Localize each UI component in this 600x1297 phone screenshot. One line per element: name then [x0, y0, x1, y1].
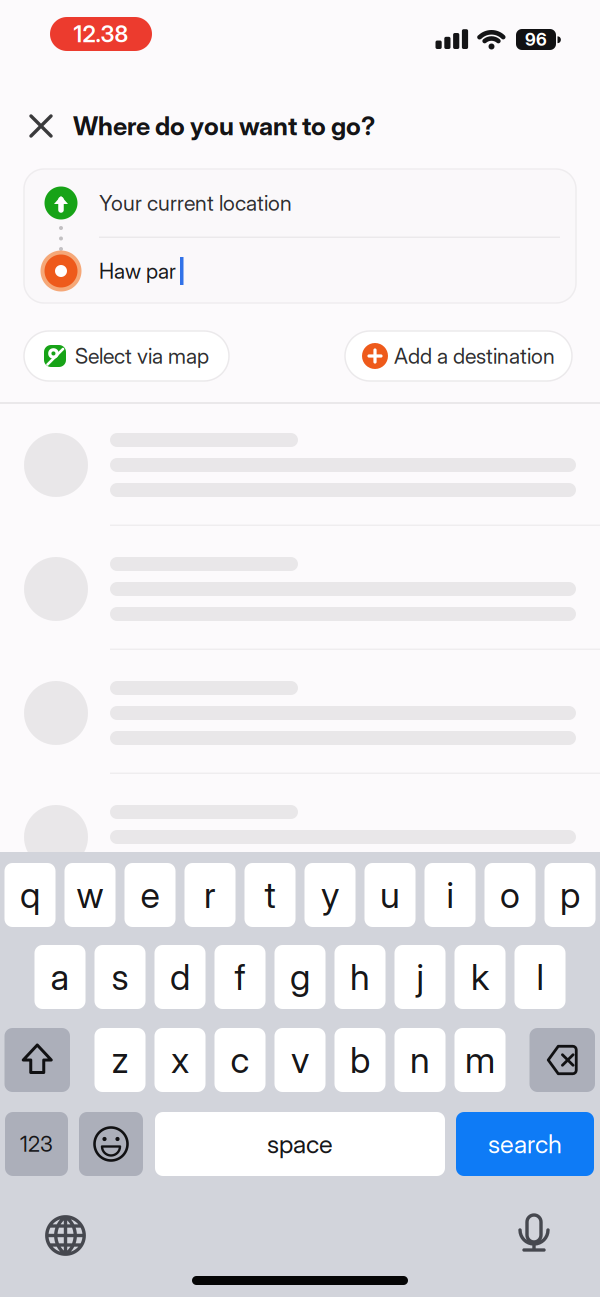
button[interactable]: Dictate [520, 1215, 548, 1252]
button[interactable]: u [364, 863, 415, 927]
staticText: x [171, 1039, 189, 1081]
button[interactable]: Close [29, 114, 53, 138]
staticText: y [321, 874, 339, 916]
staticText: g [290, 956, 310, 998]
button[interactable]: k [454, 945, 505, 1009]
button[interactable]: search [456, 1112, 594, 1176]
button[interactable]: a [34, 945, 85, 1009]
button[interactable]: e [124, 863, 175, 927]
staticText: r [204, 874, 216, 916]
staticText: j [416, 956, 423, 998]
button[interactable]: x [154, 1028, 205, 1092]
staticText: o [500, 874, 520, 916]
button[interactable]: r [184, 863, 235, 927]
button[interactable]: Select via map [24, 331, 229, 381]
staticText: u [380, 874, 400, 916]
button[interactable]: Next keyboard [45, 1215, 86, 1256]
button[interactable]: h [334, 945, 385, 1009]
staticText: q [20, 874, 40, 916]
button[interactable]: q [4, 863, 55, 927]
button[interactable]: y [304, 863, 355, 927]
staticText: n [410, 1039, 430, 1081]
staticText: i [446, 874, 453, 916]
button[interactable]: space [155, 1112, 445, 1176]
staticText: 12.38 [73, 21, 128, 47]
staticText: p [560, 874, 580, 916]
button[interactable]: f [214, 945, 265, 1009]
button[interactable]: t [244, 863, 295, 927]
button[interactable]: 123 [5, 1112, 68, 1176]
staticText: w [76, 874, 103, 916]
staticText: h [350, 956, 370, 998]
staticText: b [350, 1039, 370, 1081]
button[interactable]: l [514, 945, 565, 1009]
button[interactable]: Shift [4, 1028, 70, 1092]
staticText: c [230, 1039, 249, 1081]
staticText: s [111, 956, 128, 998]
staticText: Haw par [99, 258, 176, 284]
button[interactable]: Emoji [79, 1112, 143, 1176]
staticText: Your current location [99, 190, 292, 216]
button[interactable]: z [94, 1028, 145, 1092]
staticText: Where do you want to go? [73, 111, 375, 141]
button[interactable]: n [394, 1028, 445, 1092]
button[interactable]: m [454, 1028, 505, 1092]
staticText: space [267, 1129, 333, 1159]
staticText: Select via map [75, 343, 209, 369]
button[interactable]: o [484, 863, 535, 927]
staticText: a [50, 956, 69, 998]
staticText: k [471, 956, 489, 998]
staticText: z [111, 1039, 128, 1081]
staticText: d [170, 956, 190, 998]
staticText: e [140, 874, 159, 916]
button[interactable]: v [274, 1028, 325, 1092]
staticText: v [291, 1039, 309, 1081]
button[interactable]: s [94, 945, 145, 1009]
button[interactable]: Add a destination [345, 331, 572, 381]
staticText: t [264, 874, 275, 916]
button[interactable]: g [274, 945, 325, 1009]
button[interactable]: b [334, 1028, 385, 1092]
staticText: l [536, 956, 543, 998]
staticText: 96 [525, 29, 547, 50]
button[interactable]: w [64, 863, 115, 927]
button[interactable]: j [394, 945, 445, 1009]
staticText: 123 [20, 1131, 53, 1157]
button[interactable]: Delete [529, 1028, 595, 1092]
button[interactable]: c [214, 1028, 265, 1092]
button[interactable]: i [424, 863, 475, 927]
button[interactable]: Your current location [24, 186, 576, 219]
staticText: Add a destination [394, 343, 555, 369]
staticText: f [234, 956, 245, 998]
staticText: search [488, 1129, 562, 1159]
button[interactable]: Haw par [24, 250, 576, 291]
button[interactable]: Return to call [50, 17, 152, 51]
staticText: m [465, 1039, 495, 1081]
button[interactable]: p [544, 863, 595, 927]
button[interactable]: d [154, 945, 205, 1009]
